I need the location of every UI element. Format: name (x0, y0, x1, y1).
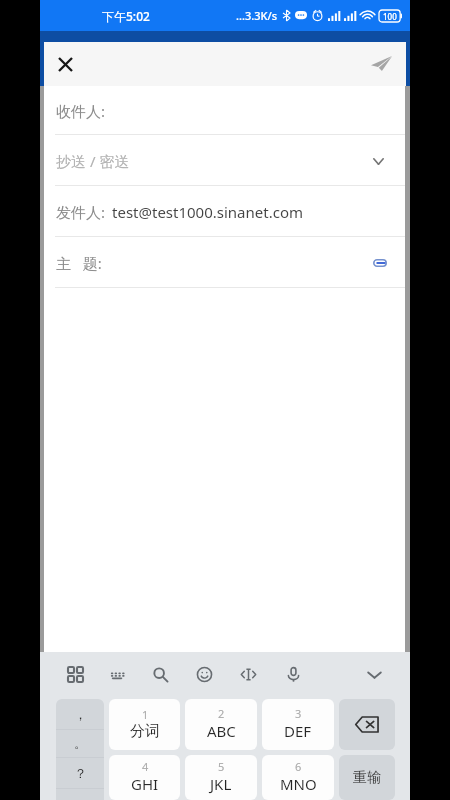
staticText: ...3.3K/s (236, 8, 278, 23)
button[interactable]: Hide keyboard (359, 659, 389, 689)
button[interactable]: Menu (60, 659, 90, 689)
staticText: MNO (280, 774, 317, 794)
button[interactable]: Attach file (367, 250, 393, 276)
button[interactable]: 4 (109, 755, 180, 800)
button[interactable]: ， (56, 699, 104, 729)
staticText: test@test1000.sinanet.com (112, 202, 303, 222)
staticText: 100 (383, 11, 397, 22)
staticText: ， (74, 706, 87, 722)
button[interactable]: 主 题: (44, 237, 405, 288)
staticText: 2 (218, 706, 225, 721)
staticText: 重输 (353, 769, 381, 787)
button[interactable]: Search (145, 659, 175, 689)
button[interactable]: 6 (262, 755, 334, 800)
button[interactable]: Keyboard layout (102, 659, 132, 689)
staticText: 。 (74, 735, 87, 751)
button[interactable]: Expand (365, 148, 391, 174)
button[interactable]: 。 (56, 729, 104, 757)
staticText: 3 (295, 706, 302, 721)
button[interactable]: Move cursor (233, 659, 263, 689)
staticText: 下午5:02 (102, 8, 150, 24)
staticText: 抄送 / 密送 (56, 151, 130, 171)
staticText: 收件人: (56, 101, 106, 121)
button[interactable]: 2 (185, 699, 257, 750)
button[interactable]: 发件人: (44, 186, 405, 237)
staticText: 6 (295, 759, 302, 774)
button[interactable]: Delete (339, 699, 395, 750)
button[interactable]: Close (44, 43, 87, 86)
staticText: 分词 (130, 722, 160, 741)
staticText: ABC (207, 721, 236, 741)
button[interactable]: 重输 (339, 755, 395, 800)
staticText: 主 题: (56, 253, 102, 273)
staticText: ？ (74, 765, 87, 781)
button[interactable]: 1 (109, 699, 180, 750)
staticText: GHI (131, 774, 159, 794)
staticText: 发件人: (56, 202, 106, 222)
staticText: 5 (218, 759, 225, 774)
staticText: 1 (142, 707, 149, 722)
button[interactable]: Send (359, 41, 403, 85)
button[interactable]: 收件人: (44, 86, 405, 135)
button[interactable]: 5 (185, 755, 257, 800)
button[interactable]: 3 (262, 699, 334, 750)
button[interactable]: 抄送 / 密送 (44, 135, 405, 186)
button[interactable]: ？ (56, 757, 104, 788)
staticText: JKL (210, 774, 232, 794)
button[interactable]: Emoji (189, 659, 219, 689)
staticText: DEF (284, 721, 312, 741)
staticText: 4 (142, 759, 149, 774)
button[interactable]: Voice input (278, 659, 308, 689)
